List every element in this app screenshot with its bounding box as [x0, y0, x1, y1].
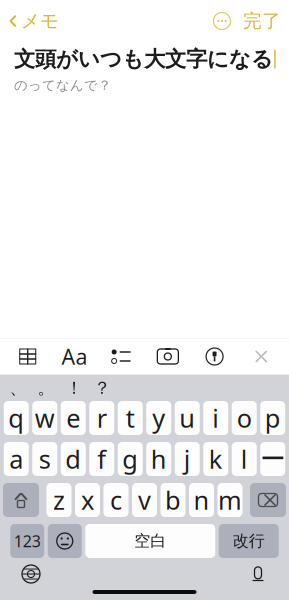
button[interactable]: x [75, 483, 100, 517]
button[interactable]: f [89, 442, 114, 476]
button[interactable]: 音声入力 [241, 559, 275, 589]
staticText: o [237, 401, 252, 435]
button[interactable]: 改行 [219, 524, 279, 558]
staticText: r [97, 401, 107, 435]
button[interactable]: q [4, 401, 29, 435]
staticText: s [39, 442, 51, 476]
staticText: u [179, 401, 195, 435]
staticText: t [126, 401, 135, 435]
staticText: ー [260, 443, 285, 474]
button[interactable]: v [132, 483, 157, 517]
staticText: l [241, 442, 248, 476]
button[interactable]: y [146, 401, 171, 435]
button[interactable]: b [160, 483, 185, 517]
staticText: Aa [61, 342, 87, 371]
button[interactable]: 書式 [55, 340, 93, 372]
button[interactable]: ？ [88, 377, 116, 399]
staticText: f [97, 442, 106, 476]
button[interactable]: j [175, 442, 200, 476]
button[interactable]: メモ [0, 3, 59, 38]
button[interactable]: k [203, 442, 228, 476]
staticText: 完了 [243, 9, 281, 32]
staticText: e [66, 401, 80, 435]
staticText: q [8, 401, 24, 435]
staticText: 空白 [134, 531, 166, 551]
staticText: g [122, 442, 138, 476]
staticText: j [184, 442, 191, 476]
button[interactable]: g [118, 442, 143, 476]
button[interactable]: 削除 [250, 483, 286, 517]
staticText: h [151, 442, 167, 476]
button[interactable]: c [103, 483, 128, 517]
button[interactable]: ！ [60, 377, 88, 399]
staticText: ！ [65, 377, 82, 399]
button[interactable]: o [232, 401, 257, 435]
staticText: v [138, 483, 151, 517]
staticText: 改行 [233, 531, 265, 551]
staticText: c [110, 483, 122, 517]
button[interactable]: n [189, 483, 214, 517]
button[interactable]: p [260, 401, 285, 435]
button[interactable]: 。 [32, 377, 60, 399]
button[interactable]: u [175, 401, 200, 435]
button[interactable]: w [32, 401, 57, 435]
staticText: w [35, 401, 55, 435]
staticText: メモ [21, 9, 59, 32]
button[interactable]: s [32, 442, 57, 476]
staticText: d [65, 442, 81, 476]
button[interactable]: z [46, 483, 71, 517]
staticText: x [81, 483, 94, 517]
button[interactable]: d [61, 442, 86, 476]
button[interactable]: 表 [9, 340, 47, 372]
button[interactable]: ー [260, 442, 285, 476]
button[interactable]: シフト [3, 483, 39, 517]
button[interactable]: a [4, 442, 29, 476]
button[interactable]: e [61, 401, 86, 435]
staticText: m [218, 483, 242, 517]
button[interactable]: h [146, 442, 171, 476]
button[interactable]: チェックリスト [102, 340, 140, 372]
staticText: z [53, 483, 65, 517]
button[interactable]: t [118, 401, 143, 435]
staticText: p [265, 401, 281, 435]
button[interactable]: 絵文字 [48, 524, 82, 558]
button[interactable]: その他 [209, 8, 235, 34]
button[interactable]: 、 [4, 377, 32, 399]
staticText: i [212, 401, 219, 435]
button[interactable]: 閉じる [242, 340, 280, 372]
button[interactable]: カメラ [149, 340, 187, 372]
staticText: a [9, 442, 23, 476]
button[interactable]: 数字 [10, 524, 44, 558]
button[interactable]: マークアップ [196, 340, 234, 372]
staticText: y [152, 401, 165, 435]
button[interactable]: r [89, 401, 114, 435]
button[interactable]: m [217, 483, 242, 517]
staticText: 、 [9, 377, 26, 399]
staticText: ？ [93, 377, 110, 399]
staticText: 文頭がいつも大文字になる [14, 46, 273, 72]
button[interactable]: i [203, 401, 228, 435]
button[interactable]: l [232, 442, 257, 476]
button[interactable]: 完了 [235, 3, 289, 38]
button[interactable]: キーボードを切り替える [14, 559, 48, 589]
staticText: k [209, 442, 223, 476]
button[interactable]: 空白 [85, 524, 215, 558]
staticText: のってなんで？ [14, 77, 111, 94]
staticText: n [193, 483, 209, 517]
staticText: b [165, 483, 181, 517]
staticText: 。 [37, 377, 54, 399]
staticText: 123 [14, 530, 41, 552]
